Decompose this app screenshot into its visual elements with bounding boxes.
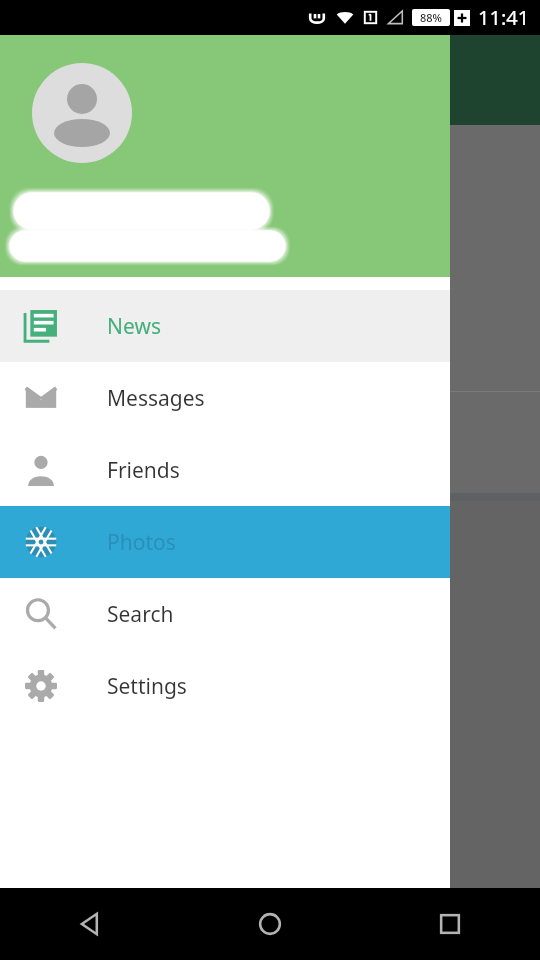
button[interactable]: Settings xyxy=(0,650,450,722)
staticText: Some xyxy=(300,561,356,590)
button[interactable]: Messages xyxy=(0,362,450,434)
staticText: 88% xyxy=(420,10,442,25)
staticText: Photos xyxy=(107,528,176,557)
button[interactable]: Friends xyxy=(0,434,450,506)
staticText: Messages xyxy=(107,384,205,413)
staticText: Settings xyxy=(107,672,187,701)
button[interactable]: Back xyxy=(0,888,180,960)
button[interactable]: News xyxy=(0,290,450,362)
button[interactable]: Search xyxy=(0,578,450,650)
button[interactable]: Home xyxy=(180,888,360,960)
button[interactable]: Recent apps xyxy=(360,888,540,960)
button[interactable]: Photos xyxy=(0,506,450,578)
staticText: News xyxy=(107,312,161,341)
staticText: Friends xyxy=(107,456,180,485)
staticText: Search xyxy=(107,600,174,629)
staticText: 11:41 xyxy=(478,4,530,31)
